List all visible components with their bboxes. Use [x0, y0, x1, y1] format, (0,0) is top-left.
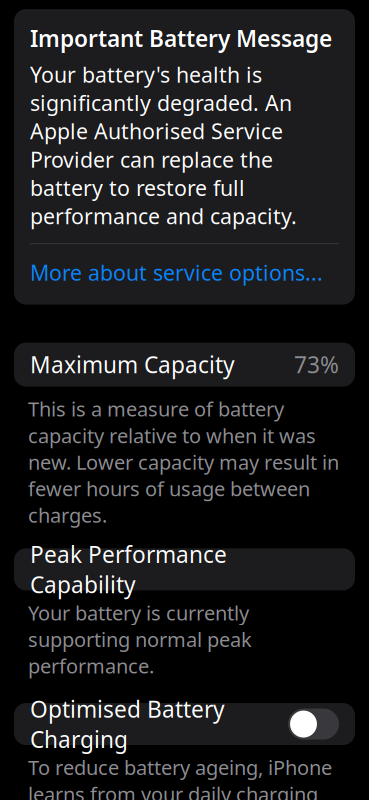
staticText: Optimised Battery Charging [30, 694, 225, 754]
button[interactable]: Maximum Capacity [0, 343, 369, 387]
staticText: Important Battery Message [30, 23, 332, 53]
button[interactable]: Optimised Battery Charging [288, 708, 339, 739]
staticText: Maximum Capacity [30, 349, 235, 380]
staticText: Your battery is currently supporting nor… [28, 599, 252, 679]
staticText: Peak Performance Capability [30, 539, 227, 599]
button[interactable]: More about service options... [30, 258, 339, 286]
staticText: This is a measure of battery capacity re… [28, 396, 339, 528]
staticText: To reduce battery ageing, iPhone learns … [28, 754, 335, 800]
staticText: More about service options... [30, 258, 323, 286]
staticText: 73% [294, 349, 339, 380]
staticText: Your battery's health is significantly d… [30, 60, 297, 230]
button[interactable]: Peak Performance Capability [0, 548, 369, 590]
